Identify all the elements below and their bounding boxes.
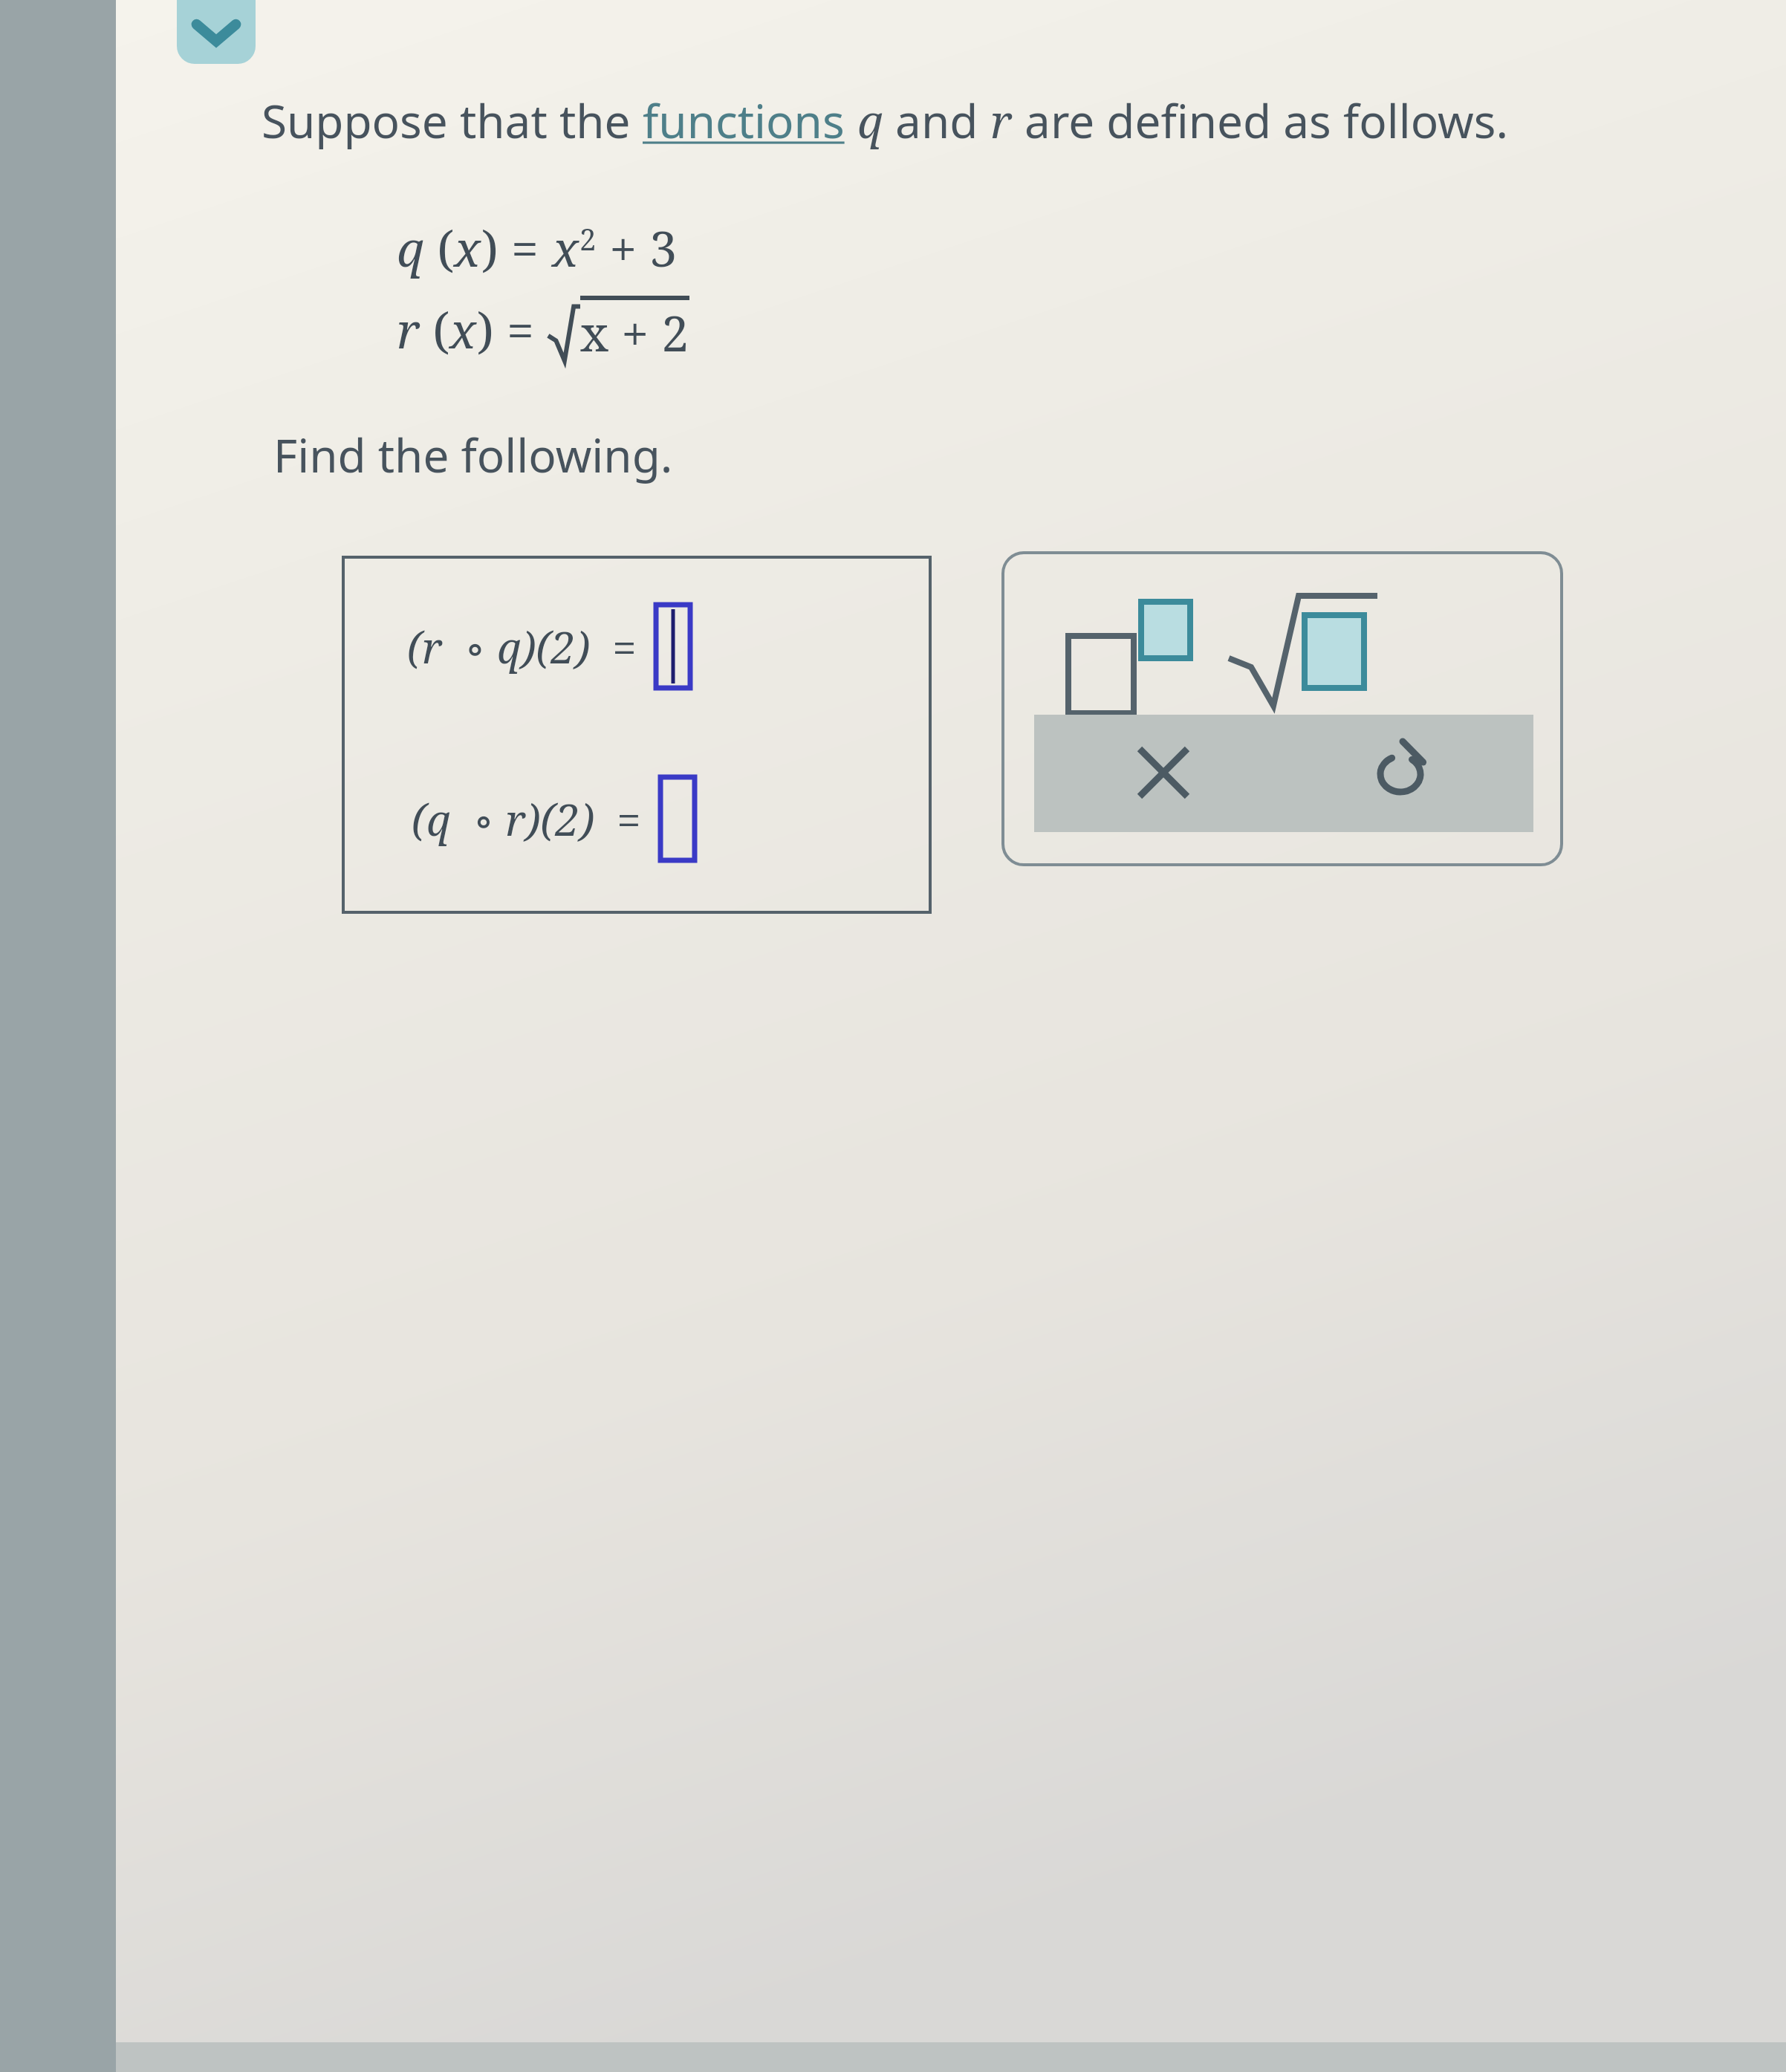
- staticText: ) =: [477, 296, 548, 363]
- button[interactable]: functions: [643, 89, 845, 152]
- staticText: (q ∘ r)(2) =: [412, 790, 641, 848]
- staticText: (: [424, 214, 454, 281]
- staticText: and: [883, 89, 990, 152]
- staticText: r: [397, 296, 420, 363]
- staticText: x + 2: [580, 299, 689, 366]
- staticText: ) =: [481, 214, 552, 281]
- button[interactable]: [656, 605, 690, 688]
- staticText: q: [397, 214, 424, 281]
- staticText: x: [552, 214, 579, 281]
- staticText: are defined as follows.: [1013, 89, 1509, 152]
- staticText: q: [857, 89, 883, 152]
- staticText: Find the following.: [273, 423, 673, 486]
- button[interactable]: Exponent: [1062, 596, 1174, 689]
- staticText: r: [990, 89, 1013, 152]
- staticText: x: [449, 296, 477, 363]
- button[interactable]: Undo: [1368, 735, 1437, 804]
- staticText: + 3: [597, 214, 678, 281]
- button[interactable]: [660, 777, 695, 860]
- staticText: (r ∘ q)(2) =: [407, 617, 637, 676]
- button[interactable]: Collapse section: [177, 0, 256, 64]
- staticText: (: [420, 296, 449, 363]
- button[interactable]: Clear: [1131, 740, 1196, 805]
- staticText: Suppose that the: [262, 89, 643, 152]
- staticText: 2: [579, 218, 597, 259]
- button[interactable]: Square root: [1226, 588, 1345, 688]
- staticText: x: [454, 214, 481, 281]
